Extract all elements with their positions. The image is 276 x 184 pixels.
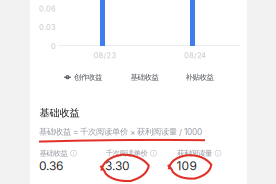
staticText: 08/23 bbox=[93, 51, 116, 60]
staticText: 创作收益 bbox=[74, 72, 102, 82]
staticText: 基础收益 bbox=[39, 106, 79, 119]
staticText: 3.30 bbox=[105, 158, 130, 173]
staticText: 基础收益 = 千次阅读单价 × 获利阅读量 / 1000 bbox=[39, 126, 202, 137]
staticText: 基础收益 bbox=[130, 72, 158, 82]
staticText: 基础收益 bbox=[39, 148, 67, 158]
staticText: 补贴收益 bbox=[185, 72, 213, 82]
button[interactable]: 千次阅读单价 bbox=[149, 149, 157, 157]
staticText: 08/24 bbox=[184, 51, 206, 60]
staticText: 0.06 bbox=[39, 4, 56, 13]
staticText: 0.03 bbox=[39, 23, 56, 32]
button[interactable]: 基础收益 bbox=[130, 72, 158, 82]
button[interactable]: 基础收益 bbox=[69, 149, 77, 157]
staticText: 0 bbox=[51, 42, 56, 51]
button[interactable]: 获利阅读量 bbox=[214, 149, 222, 157]
staticText: 0.36 bbox=[39, 158, 63, 173]
button[interactable]: 补贴收益 bbox=[185, 72, 213, 82]
staticText: 千次阅读单价 bbox=[105, 148, 147, 158]
staticText: 109 bbox=[176, 158, 196, 173]
staticText: 获利阅读量 bbox=[177, 148, 212, 158]
button[interactable]: 创作收益 bbox=[64, 72, 102, 82]
